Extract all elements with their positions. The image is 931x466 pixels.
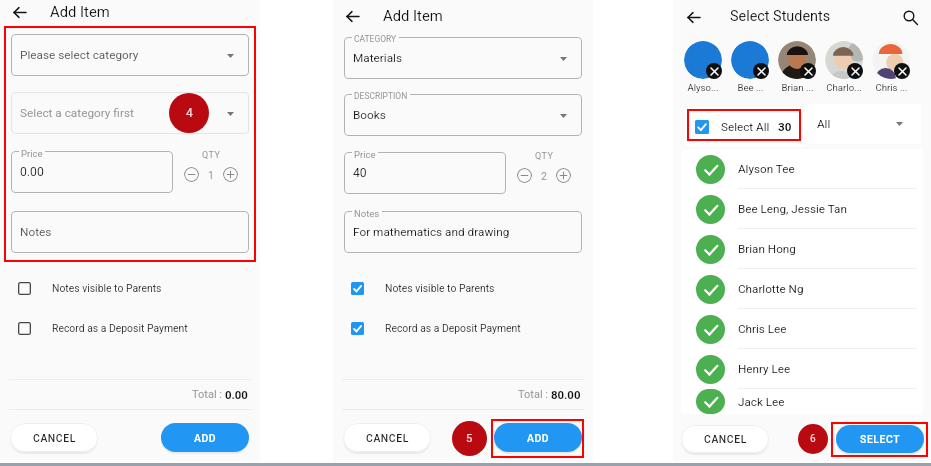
staticText: Bee ...: [737, 82, 764, 93]
staticText: For mathematics and drawing: [353, 225, 567, 239]
staticText: Notes visible to Parents: [385, 282, 495, 294]
button[interactable]: Decrease quantity: [184, 167, 199, 182]
button[interactable]: Brian Hong: [681, 229, 923, 269]
button[interactable]: Notes visible to Parents: [8, 274, 248, 302]
staticText: CANCEL: [33, 432, 76, 444]
button[interactable]: Record as a Deposit Payment: [341, 314, 581, 342]
button[interactable]: Notes visible to Parents: [341, 274, 581, 302]
staticText: Price: [354, 149, 376, 160]
button[interactable]: CANCEL: [343, 423, 431, 452]
staticText: ADD: [194, 432, 217, 444]
staticText: 80.00: [551, 388, 581, 401]
button[interactable]: [344, 211, 582, 253]
staticText: 4: [186, 106, 193, 120]
staticText: Record as a Deposit Payment: [52, 322, 188, 334]
button[interactable]: Increase quantity: [223, 167, 238, 182]
button[interactable]: Back: [341, 5, 363, 27]
button[interactable]: ADD: [161, 423, 249, 452]
staticText: Select a category first: [20, 106, 227, 120]
staticText: Alyson Tee: [738, 162, 923, 176]
staticText: Alyso...: [687, 82, 719, 93]
staticText: 40: [353, 166, 491, 180]
button[interactable]: Search: [900, 7, 920, 27]
button[interactable]: CANCEL: [10, 423, 98, 452]
staticText: Bee Leng, Jessie Tan: [738, 202, 923, 216]
button[interactable]: Select All: [685, 107, 805, 147]
button[interactable]: Charlotte Ng: [681, 269, 923, 309]
button[interactable]: All: [805, 104, 921, 144]
staticText: Charlotte Ng: [738, 282, 923, 296]
staticText: Notes: [20, 225, 234, 239]
button[interactable]: Jack Lee: [681, 389, 923, 414]
button[interactable]: Remove Alyso...: [706, 63, 722, 79]
staticText: Books: [353, 108, 560, 122]
staticText: Total :: [192, 388, 225, 401]
button[interactable]: [11, 34, 249, 76]
button[interactable]: Record as a Deposit Payment: [8, 314, 248, 342]
staticText: 30: [778, 120, 792, 134]
button[interactable]: [11, 211, 249, 253]
staticText: Chris Lee: [738, 322, 923, 336]
button[interactable]: [344, 152, 506, 194]
button[interactable]: SELECT: [836, 425, 924, 453]
button[interactable]: Decrease quantity: [517, 168, 532, 183]
button[interactable]: Remove Charlo...: [847, 63, 863, 79]
staticText: Select All: [721, 120, 770, 134]
button[interactable]: Remove Chris ...: [894, 63, 910, 79]
button[interactable]: Back: [8, 1, 30, 23]
staticText: Add Item: [383, 7, 443, 24]
staticText: 5: [466, 432, 473, 445]
button[interactable]: Remove Brian ...: [800, 63, 816, 79]
button[interactable]: Increase quantity: [556, 168, 571, 183]
staticText: QTY: [535, 151, 554, 162]
staticText: Price: [21, 148, 43, 159]
staticText: DESCRIPTION: [354, 91, 408, 101]
staticText: Brian Hong: [738, 242, 923, 256]
button[interactable]: [344, 37, 582, 79]
staticText: Henry Lee: [738, 362, 923, 376]
staticText: Charlo...: [826, 82, 862, 93]
button[interactable]: Remove Bee ...: [753, 63, 769, 79]
staticText: QTY: [202, 150, 221, 161]
button[interactable]: Henry Lee: [681, 349, 923, 389]
staticText: Jack Lee: [738, 395, 923, 409]
staticText: CANCEL: [704, 433, 747, 445]
staticText: ADD: [527, 432, 550, 444]
staticText: Select Students: [730, 8, 831, 25]
staticText: Brian ...: [781, 82, 814, 93]
staticText: 0.00: [225, 388, 248, 401]
staticText: Materials: [353, 51, 560, 65]
staticText: 2: [541, 170, 547, 182]
staticText: 6: [810, 433, 816, 445]
staticText: Chris ...: [875, 82, 908, 93]
button[interactable]: [344, 94, 582, 136]
button[interactable]: [11, 151, 173, 193]
staticText: 1: [208, 169, 214, 181]
staticText: Notes visible to Parents: [52, 282, 162, 294]
staticText: Add Item: [50, 3, 110, 20]
button[interactable]: Chris Lee: [681, 309, 923, 349]
staticText: All: [817, 117, 896, 131]
button[interactable]: Alyson Tee: [681, 149, 923, 189]
staticText: SELECT: [860, 433, 901, 445]
button[interactable]: CANCEL: [681, 425, 769, 453]
staticText: CANCEL: [366, 432, 409, 444]
button[interactable]: [11, 92, 249, 134]
staticText: 0.00: [20, 165, 158, 179]
staticText: Please select category: [20, 48, 227, 62]
staticText: Total :: [518, 388, 551, 401]
button[interactable]: Back: [682, 6, 704, 28]
button[interactable]: ADD: [494, 423, 582, 452]
button[interactable]: Bee Leng, Jessie Tan: [681, 189, 923, 229]
staticText: Record as a Deposit Payment: [385, 322, 521, 334]
staticText: CATEGORY: [354, 34, 397, 44]
staticText: Notes: [354, 208, 380, 219]
